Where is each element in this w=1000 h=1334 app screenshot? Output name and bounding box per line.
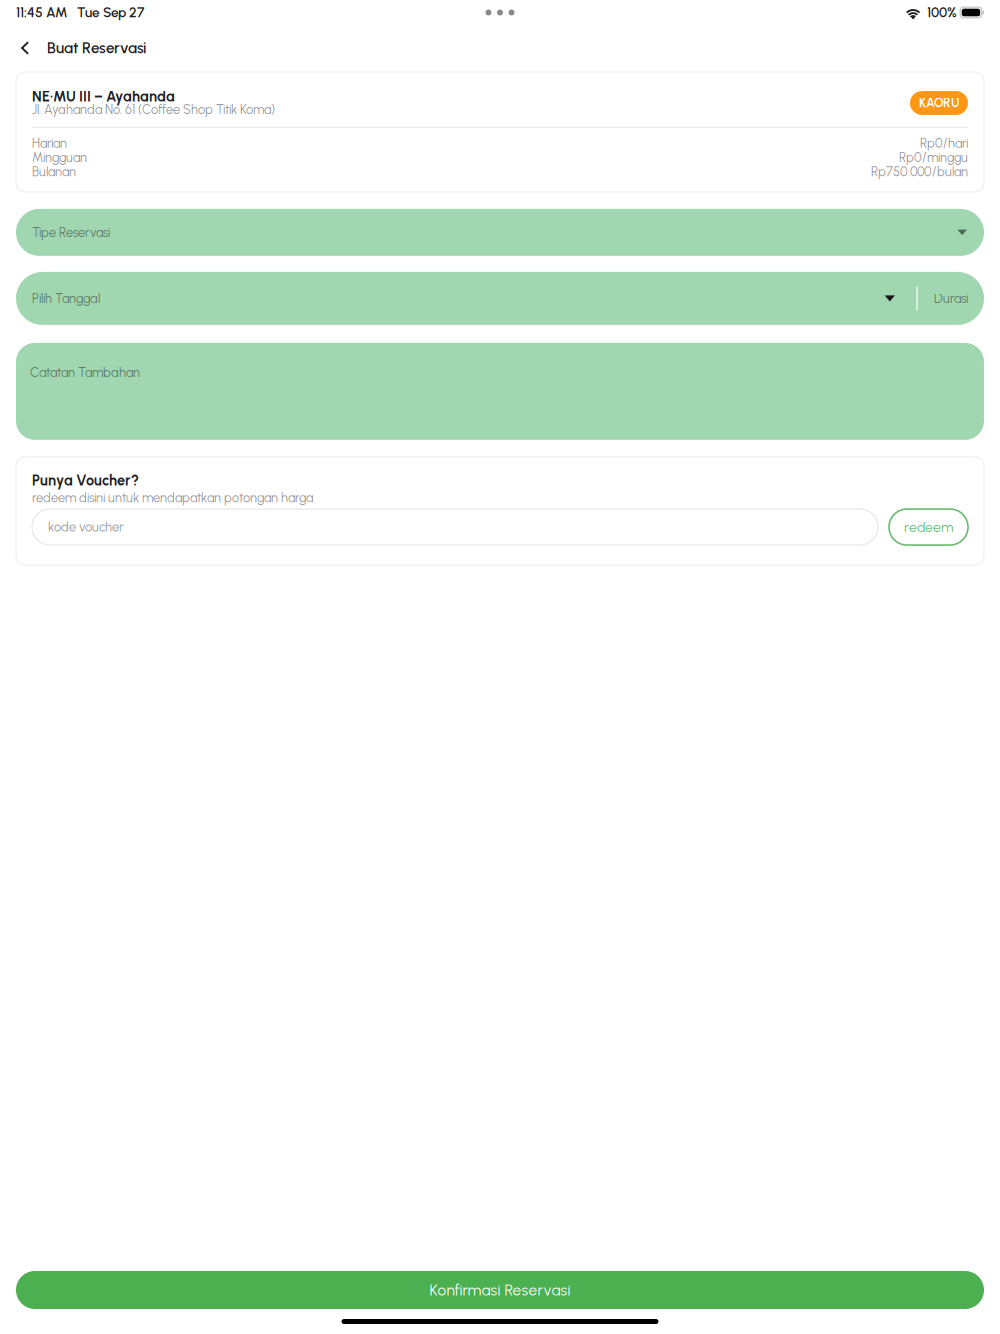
button[interactable]: Back [11, 34, 39, 62]
button[interactable]: Tipe Reservasi [16, 209, 984, 256]
button[interactable]: Durasi [918, 272, 984, 325]
staticText: 100% [927, 4, 957, 21]
staticText: Harian [32, 135, 67, 151]
staticText: Tue Sep 27 [77, 4, 144, 21]
button[interactable]: redeem [889, 509, 968, 545]
staticText: 11:45 AM [16, 4, 67, 21]
staticText: Konfirmasi Reservasi [429, 1281, 570, 1299]
staticText: Tipe Reservasi [32, 225, 110, 240]
staticText: Mingguan [32, 150, 87, 165]
staticText: Punya Voucher? [32, 472, 139, 489]
staticText: kode voucher [48, 519, 124, 535]
staticText: Catatan Tambahan [30, 365, 140, 380]
staticText: Buat Reservasi [47, 39, 146, 57]
staticText: Pilih Tanggal [32, 291, 100, 306]
staticText: Rp750.000/bulan [871, 164, 968, 179]
staticText: Jl. Ayahanda No. 61 (Coffee Shop Titik K… [32, 102, 275, 117]
button[interactable]: Konfirmasi Reservasi [16, 1271, 984, 1309]
staticText: Rp0/minggu [899, 150, 968, 165]
staticText: KAORU [919, 96, 959, 110]
staticText: NE·MU III – Ayahanda [32, 88, 175, 105]
staticText: redeem disini untuk mendapatkan potongan… [32, 490, 313, 506]
staticText: redeem [904, 519, 953, 535]
button[interactable]: Pilih Tanggal [16, 272, 916, 325]
staticText: Bulanan [32, 164, 76, 179]
staticText: Rp0/hari [920, 135, 968, 151]
staticText: Durasi [934, 291, 968, 306]
